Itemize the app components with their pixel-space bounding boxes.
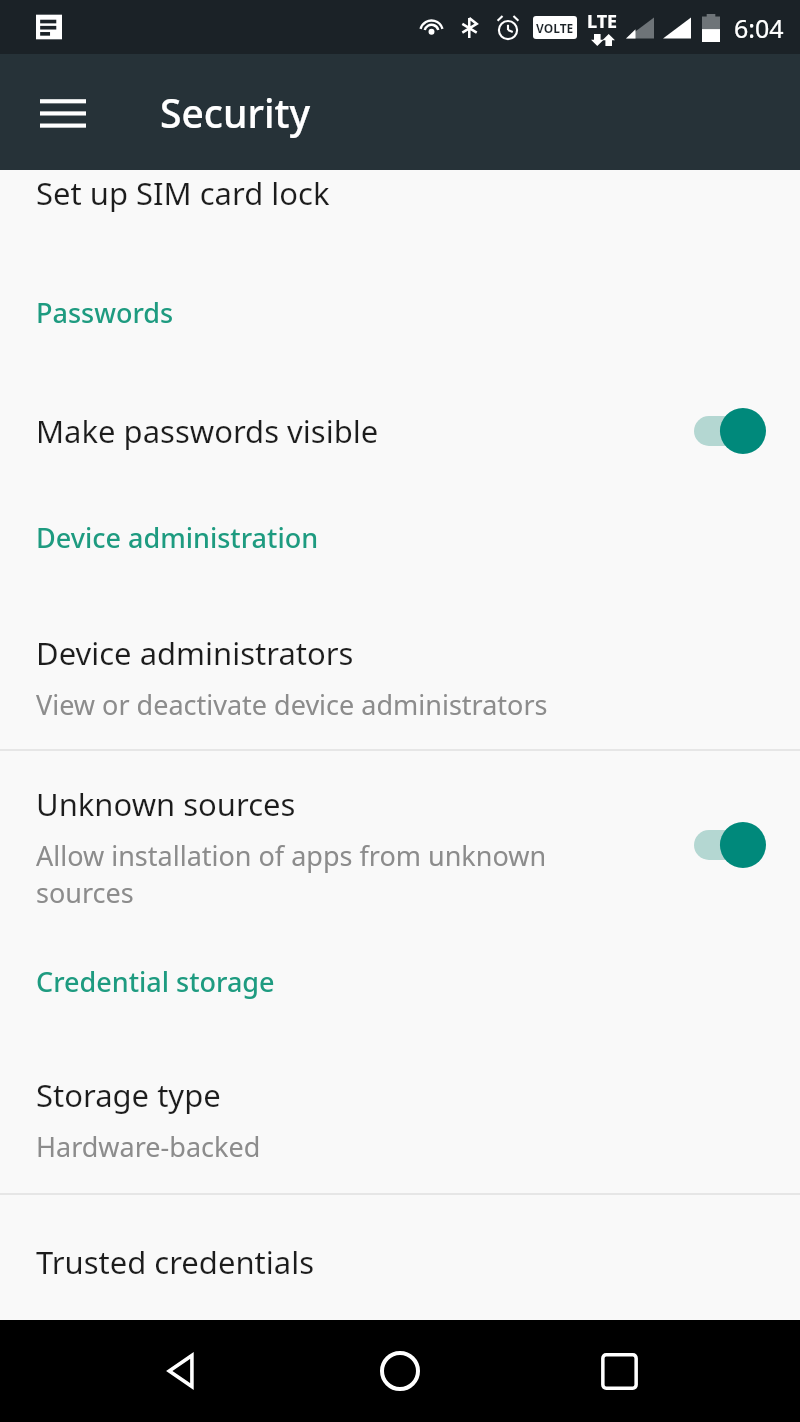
staticText: Trusted credentials (36, 1241, 314, 1283)
staticText: Device administrators (36, 632, 354, 674)
button[interactable]: Switch, on (688, 405, 772, 457)
staticText: Set up SIM card lock (36, 172, 330, 214)
staticText: Make passwords visible (36, 410, 379, 452)
staticText: 6:04 (734, 11, 784, 45)
staticText: Storage type (36, 1074, 221, 1116)
staticText: Credential storage (36, 963, 275, 1000)
button[interactable]: Storage type (0, 1074, 800, 1165)
staticText: Passwords (36, 294, 174, 331)
button[interactable]: Home (365, 1336, 435, 1406)
staticText: Hardware-backed (36, 1128, 261, 1165)
button[interactable]: Trusted credentials (0, 1239, 800, 1285)
button[interactable]: Recent apps (584, 1336, 654, 1406)
button[interactable]: Back (146, 1336, 216, 1406)
button[interactable]: Open navigation drawer (24, 73, 102, 151)
button[interactable]: Switch, on (688, 819, 772, 871)
staticText: VOLTE (536, 20, 574, 36)
staticText: Security (160, 86, 310, 139)
staticText: Device administration (36, 519, 319, 556)
staticText: Unknown sources (36, 783, 296, 825)
staticText: View or deactivate device administrators (36, 686, 548, 723)
button[interactable]: Unknown sources (0, 783, 800, 919)
button[interactable]: Set up SIM card lock (0, 170, 800, 228)
button[interactable]: Device administrators (0, 632, 800, 723)
staticText: Allow installation of apps from unknown … (36, 837, 610, 911)
button[interactable]: Make passwords visible (0, 403, 800, 459)
staticText: LTE (587, 9, 618, 34)
